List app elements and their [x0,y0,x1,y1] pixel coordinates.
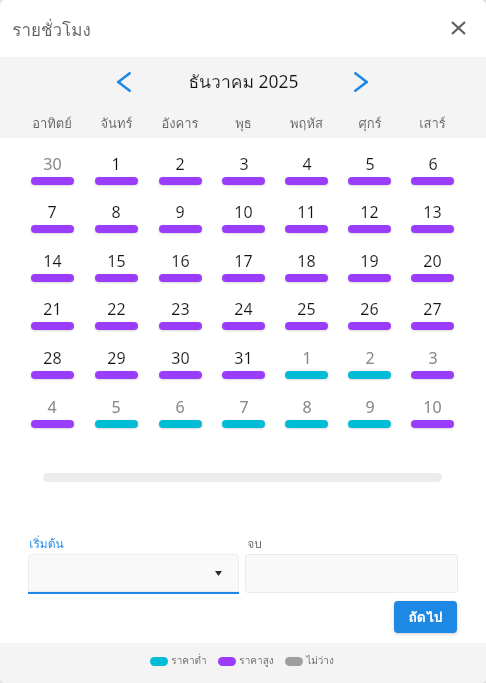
button[interactable]: 23 [148,298,212,342]
button[interactable]: 29 [84,347,148,391]
staticText: 13 [423,201,442,223]
button[interactable]: ไม่ว่าง [285,653,334,669]
button[interactable]: Previous month [104,62,144,102]
button[interactable]: 21 [20,298,84,342]
button[interactable]: 26 [338,298,401,342]
button[interactable]: 24 [212,298,275,342]
staticText: 2 [365,347,375,369]
button[interactable]: Start time [28,554,239,594]
button[interactable]: 2 [338,347,401,391]
staticText: 29 [107,347,126,369]
button[interactable]: 8 [275,396,338,440]
button[interactable]: 5 [338,153,401,197]
staticText: เริ่มต้น [29,534,64,553]
staticText: 30 [43,153,62,175]
staticText: 1 [111,153,121,175]
button[interactable]: 30 [20,153,84,197]
staticText: 10 [423,396,442,418]
staticText: รายชั่วโมง [12,16,91,43]
button[interactable]: Close [440,10,476,46]
staticText: ราคาสูง [239,653,274,669]
button[interactable]: 20 [401,250,464,294]
staticText: เสาร์ [419,113,446,134]
staticText: 9 [175,201,185,223]
staticText: 5 [365,153,375,175]
button[interactable]: 6 [401,153,464,197]
staticText: 6 [175,396,185,418]
button[interactable]: 28 [20,347,84,391]
staticText: 8 [302,396,312,418]
button[interactable]: 22 [84,298,148,342]
button[interactable]: 13 [401,201,464,245]
staticText: 27 [423,298,442,320]
staticText: 12 [360,201,379,223]
button[interactable]: 3 [401,347,464,391]
button[interactable]: 31 [212,347,275,391]
button[interactable]: ถัดไป [394,601,457,633]
staticText: 7 [239,396,249,418]
button[interactable]: 11 [275,201,338,245]
button[interactable]: 17 [212,250,275,294]
staticText: พุธ [235,113,252,134]
staticText: ไม่ว่าง [306,653,334,669]
button[interactable]: 27 [401,298,464,342]
button[interactable]: 7 [212,396,275,440]
button[interactable]: 10 [212,201,275,245]
button[interactable]: ราคาต่ำ [150,653,207,669]
staticText: 4 [47,396,57,418]
button[interactable]: 25 [275,298,338,342]
staticText: พฤหัส [290,113,323,134]
staticText: 18 [297,250,316,272]
staticText: 17 [234,250,253,272]
staticText: 3 [428,347,438,369]
staticText: 2 [175,153,185,175]
button[interactable]: 1 [275,347,338,391]
button[interactable]: 15 [84,250,148,294]
staticText: 10 [234,201,253,223]
staticText: 30 [171,347,190,369]
staticText: 25 [297,298,316,320]
button[interactable]: 14 [20,250,84,294]
button[interactable]: 7 [20,201,84,245]
button[interactable]: 16 [148,250,212,294]
staticText: ธันวาคม 2025 [188,68,299,96]
staticText: 11 [297,201,316,223]
staticText: อังคาร [161,113,199,134]
staticText: 7 [47,201,57,223]
button[interactable]: Next month [341,62,381,102]
staticText: 1 [302,347,312,369]
staticText: 21 [43,298,62,320]
button[interactable]: 9 [338,396,401,440]
button[interactable]: ราคาสูง [218,653,274,669]
button[interactable]: 1 [84,153,148,197]
button[interactable]: End time [245,554,458,593]
button[interactable]: 18 [275,250,338,294]
button[interactable]: 2 [148,153,212,197]
button[interactable]: 10 [401,396,464,440]
staticText: 3 [239,153,249,175]
staticText: 24 [234,298,253,320]
staticText: 31 [234,347,253,369]
button[interactable]: 8 [84,201,148,245]
button[interactable]: 9 [148,201,212,245]
staticText: อาทิตย์ [32,113,72,134]
button[interactable]: 3 [212,153,275,197]
staticText: 22 [107,298,126,320]
button[interactable]: 12 [338,201,401,245]
staticText: 26 [360,298,379,320]
staticText: ราคาต่ำ [171,653,207,669]
button[interactable]: 30 [148,347,212,391]
button[interactable]: 19 [338,250,401,294]
staticText: 28 [43,347,62,369]
staticText: ศุกร์ [358,113,382,134]
staticText: 23 [171,298,190,320]
button[interactable]: 6 [148,396,212,440]
staticText: ถัดไป [408,606,443,628]
button[interactable]: 5 [84,396,148,440]
staticText: 9 [365,396,375,418]
button[interactable]: 4 [275,153,338,197]
staticText: จันทร์ [100,113,133,134]
staticText: 4 [302,153,312,175]
staticText: 19 [360,250,379,272]
button[interactable]: 4 [20,396,84,440]
